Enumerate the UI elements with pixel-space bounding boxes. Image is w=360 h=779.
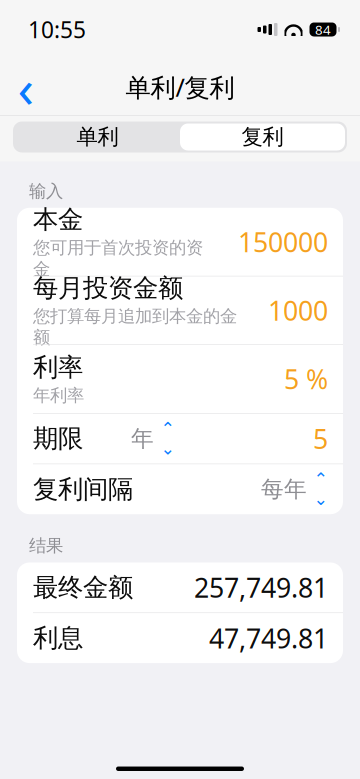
staticText: 您可用于首次投资的资金 xyxy=(33,237,203,280)
staticText: 最终金额 xyxy=(33,572,133,603)
staticText: 利率 xyxy=(33,352,83,383)
button[interactable]: 单利 xyxy=(13,121,180,152)
staticText: 150000 xyxy=(238,224,328,259)
staticText: 本金 xyxy=(33,204,83,235)
staticText: 5 % xyxy=(284,361,328,397)
staticText: 年利率 xyxy=(33,385,84,406)
button[interactable]: 每月投资金额 xyxy=(17,276,343,344)
button[interactable]: 返回 xyxy=(4,65,48,109)
staticText: 复利间隔 xyxy=(33,474,133,505)
button[interactable]: 本金 xyxy=(17,208,343,276)
staticText: 10:55 xyxy=(28,14,86,44)
staticText: ⌃ ⌄ xyxy=(160,419,175,458)
staticText: 5 xyxy=(313,421,328,456)
staticText: 47,749.81 xyxy=(209,620,328,656)
staticText: 单利 xyxy=(76,124,118,150)
staticText: 84 xyxy=(315,21,331,38)
button[interactable]: 期限 xyxy=(17,414,343,464)
staticText: 利息 xyxy=(33,622,83,654)
staticText: 1000 xyxy=(268,293,328,328)
staticText: 257,749.81 xyxy=(194,570,328,605)
staticText: 每年 xyxy=(261,475,307,503)
staticText: 您打算每月追加到本金的金额 xyxy=(33,306,237,348)
staticText: 复利 xyxy=(241,124,283,150)
button[interactable]: 复利间隔 xyxy=(17,464,343,514)
staticText: ⌃ ⌄ xyxy=(313,469,328,509)
button[interactable]: 复利 xyxy=(180,121,347,152)
button[interactable]: 利率 xyxy=(17,345,343,413)
staticText: 期限 xyxy=(33,423,83,454)
staticText: 年 xyxy=(131,425,154,452)
staticText: 单利/复利 xyxy=(125,70,234,104)
staticText: 每月投资金额 xyxy=(33,272,183,304)
staticText: 结果 xyxy=(29,535,63,556)
staticText: ‹ xyxy=(17,52,34,122)
staticText: 输入 xyxy=(29,180,63,202)
